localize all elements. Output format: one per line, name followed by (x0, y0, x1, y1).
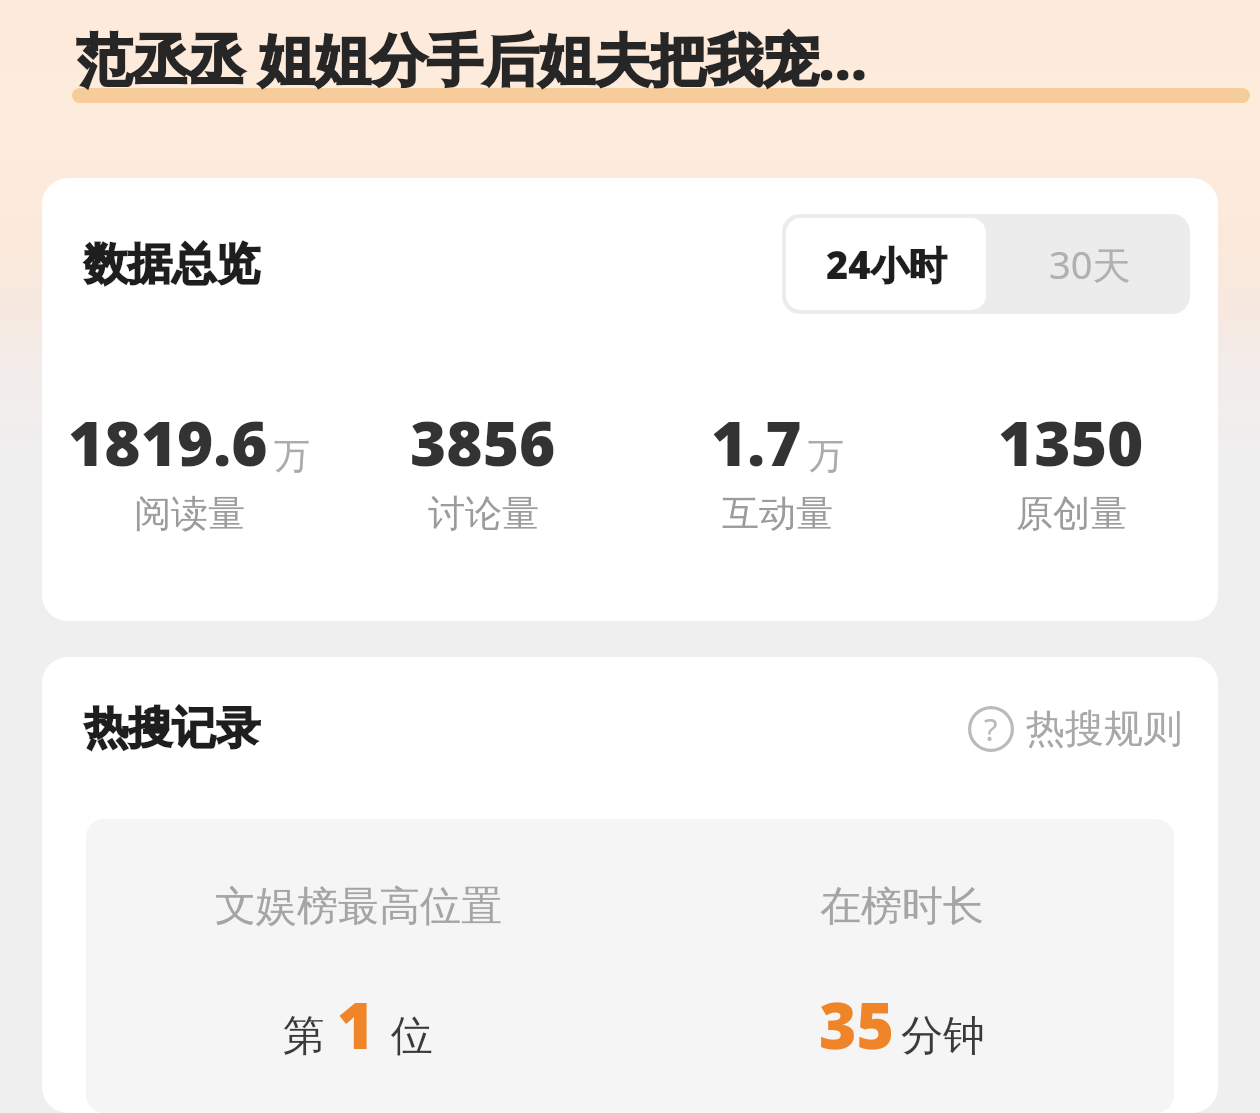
button[interactable]: 热搜规则 (968, 704, 1182, 753)
staticText: 互动量 (722, 490, 833, 537)
staticText: 分钟 (901, 1010, 985, 1063)
staticText: 3856 (410, 400, 556, 484)
staticText: 第 (283, 1010, 325, 1063)
staticText: 位 (391, 1010, 433, 1063)
staticText: 30天 (1049, 238, 1131, 290)
staticText: 热搜规则 (1026, 704, 1182, 753)
staticText: 35 (819, 981, 895, 1068)
staticText: 文娱榜最高位置 (215, 881, 502, 933)
staticText: 阅读量 (134, 490, 245, 537)
staticText: 1.7 (711, 400, 802, 484)
button[interactable]: 24小时 (786, 218, 986, 310)
staticText: 1 (337, 981, 375, 1068)
staticText: 讨论量 (428, 490, 539, 537)
button[interactable]: 30天 (990, 214, 1190, 314)
staticText: 24小时 (826, 238, 947, 290)
staticText: ? (984, 708, 998, 750)
staticText: 万 (808, 433, 844, 478)
staticText: 1819.6 (68, 400, 268, 484)
staticText: 万 (274, 433, 310, 478)
staticText: 范丞丞 姐姐分手后姐夫把我宠… (76, 20, 868, 96)
staticText: 在榜时长 (820, 881, 984, 933)
staticText: 1350 (998, 400, 1144, 484)
staticText: 数据总览 (84, 237, 260, 292)
staticText: 热搜记录 (84, 701, 260, 756)
staticText: 原创量 (1016, 490, 1127, 537)
